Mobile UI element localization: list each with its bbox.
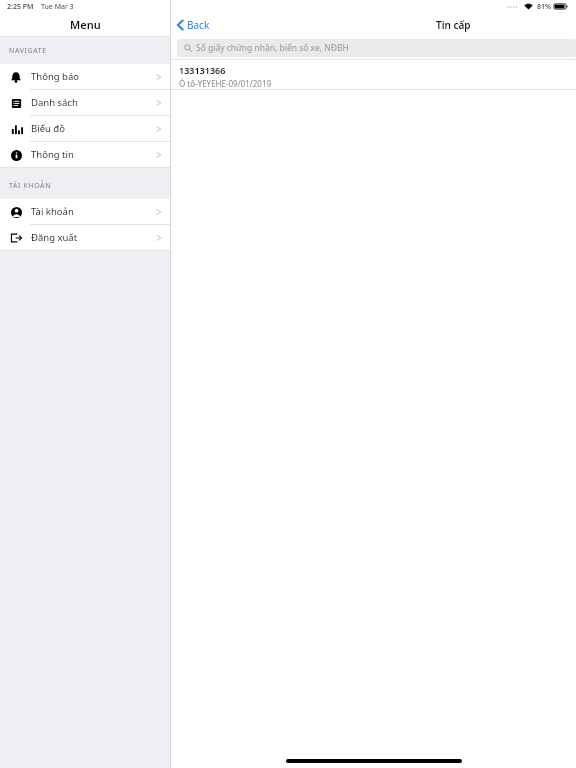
button[interactable]: Tài khoản — [0, 199, 170, 224]
other: Back — [177, 19, 184, 31]
button[interactable]: Thông tin — [0, 142, 170, 167]
staticText: Tue Mar 3 — [41, 2, 74, 12]
staticText: Tin cấp — [436, 18, 471, 32]
staticText: 81% — [537, 2, 551, 12]
staticText: TÀI KHOẢN — [9, 181, 52, 191]
staticText: Danh sách — [31, 96, 78, 109]
staticText: Tài khoản — [31, 205, 74, 218]
staticText: Menu — [70, 17, 101, 32]
staticText: 133131366 — [179, 64, 226, 76]
staticText: Thông báo — [31, 70, 80, 83]
staticText: Ô tô-YEYEHE-09/01/2019 — [179, 78, 272, 89]
staticText: Đăng xuất — [31, 231, 78, 244]
button[interactable]: 133131366 — [171, 60, 576, 89]
button[interactable]: Back — [171, 15, 216, 35]
staticText: Số giấy chứng nhận, biển số xe, NĐBH — [196, 42, 349, 54]
staticText: Thông tin — [31, 148, 74, 161]
button[interactable]: Biểu đồ — [0, 116, 170, 141]
staticText: NAVIGATE — [9, 46, 47, 56]
button[interactable]: Số giấy chứng nhận, biển số xe, NĐBH — [177, 39, 576, 57]
button[interactable]: Danh sách — [0, 90, 170, 115]
button[interactable]: Thông báo — [0, 64, 170, 89]
staticText: Biểu đồ — [31, 122, 65, 135]
staticText: 2:25 PM — [7, 2, 34, 12]
button[interactable]: Đăng xuất — [0, 225, 170, 250]
staticText: Back — [187, 18, 210, 32]
